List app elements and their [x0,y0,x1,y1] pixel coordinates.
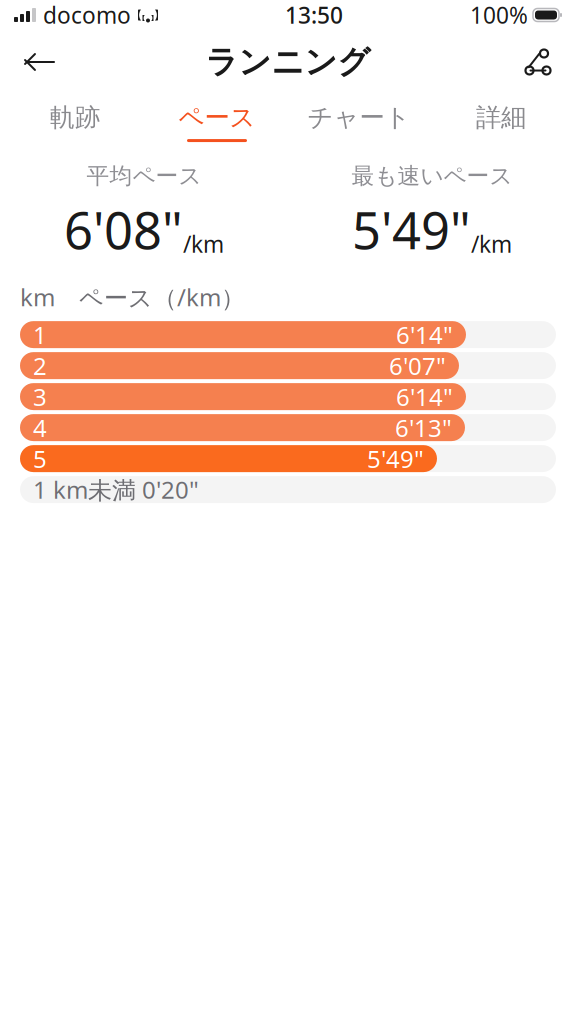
button[interactable]: 軌跡 [4,99,146,145]
staticText: 6'14" [396,319,453,351]
staticText: 5'49" [367,443,424,475]
staticText: 6'07" [389,350,446,382]
staticText: 1 [33,319,47,351]
staticText: 2 [33,350,47,382]
staticText: 5'49" [352,196,471,263]
button[interactable]: 共有 [510,34,566,90]
staticText: km ペース（/km） [20,281,245,313]
staticText: ペース [178,102,255,133]
staticText: /km [183,229,224,259]
staticText: 平均ペース [86,162,201,190]
button[interactable]: 詳細 [430,99,572,145]
staticText: 6'08" [64,196,183,263]
staticText: 13:50 [285,0,343,30]
staticText: 5 [33,443,47,475]
staticText: 最も速いペース [351,162,512,190]
staticText: 100% [470,0,528,30]
staticText: 3 [33,381,47,413]
button[interactable]: ペース [146,99,288,145]
button[interactable]: 戻る [10,34,66,90]
staticText: チャート [307,102,410,133]
staticText: docomo [43,0,131,30]
staticText: 1 km未満 0'20" [33,474,199,506]
staticText: 6'13" [395,412,452,444]
staticText: 軌跡 [50,102,100,133]
button[interactable]: チャート [288,99,430,145]
staticText: 4 [33,412,47,444]
staticText: 6'14" [396,381,453,413]
staticText: /km [471,229,512,259]
staticText: 詳細 [476,102,526,133]
staticText: ランニング [205,42,370,82]
